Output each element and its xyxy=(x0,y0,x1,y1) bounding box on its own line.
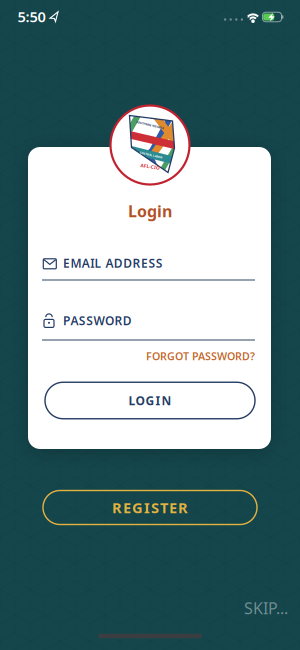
button[interactable]: EMAIL ADDRESS xyxy=(42,249,255,281)
button[interactable]: LOGIN xyxy=(45,382,255,419)
staticText: PASSWORD xyxy=(63,313,132,328)
staticText: 5:50 xyxy=(17,7,45,26)
staticText: AFL-CIO xyxy=(126,158,174,174)
staticText: CENTRAL LABOR xyxy=(108,148,194,162)
staticText: Login xyxy=(128,200,172,222)
staticText: EMAIL ADDRESS xyxy=(63,255,163,271)
button[interactable]: SKIP... xyxy=(12,597,288,619)
staticText: LOGIN xyxy=(128,392,171,408)
button[interactable]: REGISTER xyxy=(43,490,257,524)
staticText: REGISTER xyxy=(112,498,188,517)
staticText: SOUTHERN NEVADA xyxy=(97,118,202,132)
staticText: SKIP... xyxy=(244,597,288,619)
button[interactable]: FORGOT PASSWORD? xyxy=(42,349,255,363)
staticText: FORGOT PASSWORD? xyxy=(146,349,255,363)
button[interactable]: PASSWORD xyxy=(42,307,255,341)
